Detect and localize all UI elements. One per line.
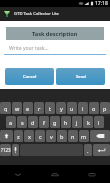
button[interactable]: i [78,102,88,114]
staticText: u [70,105,74,112]
button[interactable]: t [45,102,55,114]
button[interactable]: v [46,130,56,142]
staticText: m [81,133,87,140]
staticText: z [17,133,20,140]
button[interactable]: n [68,130,78,142]
button[interactable]: e [23,102,33,114]
staticText: t [49,105,51,112]
staticText: n [71,133,75,140]
button[interactable]: Enter [93,144,110,156]
button[interactable]: Voice input [12,144,19,156]
button[interactable]: Recent apps [73,165,110,183]
staticText: r [38,105,41,112]
staticText: a [9,119,13,126]
staticText: b [60,133,64,140]
staticText: g [53,119,57,126]
button[interactable]: . [84,144,92,156]
staticText: Cancel [23,74,37,80]
staticText: j [76,119,78,126]
staticText: q [4,105,8,112]
button[interactable]: q [0,102,11,114]
button[interactable]: o [89,102,99,114]
staticText: h [64,119,68,126]
staticText: Task description [32,30,78,38]
staticText: k [87,119,90,126]
staticText: o [92,105,96,112]
staticText: Write your task... [9,45,49,52]
button[interactable]: k [83,116,93,128]
staticText: GTD Task Collector Lite [14,11,59,17]
button[interactable]: Task description [6,27,104,40]
staticText: i [82,105,84,112]
other: App icon [4,11,10,17]
staticText: d [31,119,35,126]
button[interactable]: x [24,130,34,142]
button[interactable]: z [14,130,23,142]
button[interactable]: Send [56,68,105,85]
button[interactable]: Cancel [5,68,54,85]
button[interactable]: w [12,102,22,114]
button[interactable]: r [34,102,44,114]
staticText: c [39,133,42,140]
staticText: f [43,119,45,126]
staticText: x [28,133,31,140]
staticText: s [21,119,24,126]
staticText: w [15,105,20,112]
button[interactable]: d [28,116,38,128]
button[interactable]: g [50,116,60,128]
button[interactable]: Home [36,165,73,183]
staticText: y [60,105,63,112]
staticText: l [98,119,100,126]
staticText: v [50,133,53,140]
button[interactable]: h [61,116,71,128]
button[interactable]: a [6,116,16,128]
button[interactable]: s [17,116,27,128]
staticText: Send [76,74,86,80]
button[interactable]: Back [0,165,36,183]
staticText: p [103,105,107,112]
button[interactable]: u [67,102,77,114]
button[interactable]: m [79,130,89,142]
staticText: . [87,147,89,154]
button[interactable]: l [94,116,104,128]
staticText: e [26,105,30,112]
button[interactable]: j [72,116,82,128]
button[interactable]: ?123 [0,144,11,156]
button[interactable]: Shift [0,130,13,142]
button[interactable]: b [57,130,67,142]
button[interactable]: c [35,130,45,142]
button[interactable]: f [39,116,49,128]
staticText: 17:18 [95,0,108,7]
button[interactable]: p [100,102,110,114]
button[interactable]: y [56,102,66,114]
staticText: ?123 [1,147,11,153]
button[interactable]: Backspace [90,130,110,142]
